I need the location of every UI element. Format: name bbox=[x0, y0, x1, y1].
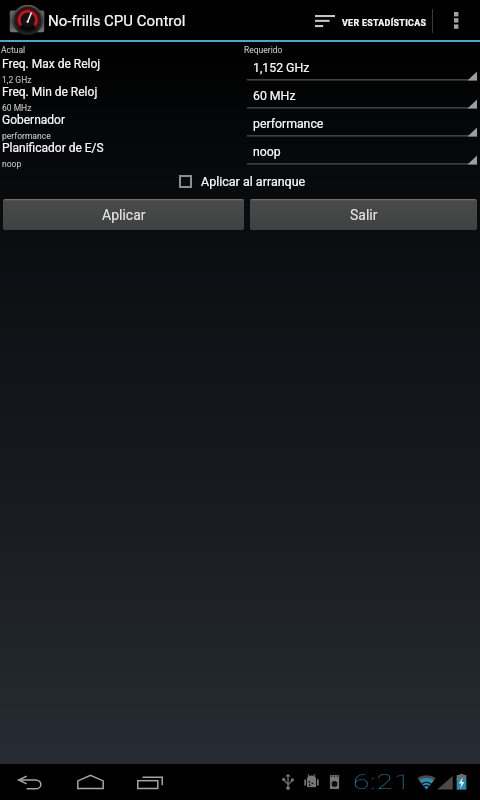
staticText: performance bbox=[2, 131, 51, 141]
button[interactable]: 1,152 GHz bbox=[244, 52, 480, 80]
button[interactable]: Aplicar bbox=[3, 199, 244, 230]
staticText: 6:21 bbox=[353, 770, 413, 795]
staticText: noop bbox=[2, 159, 22, 169]
staticText: Planificador de E/S bbox=[2, 141, 104, 155]
staticText: Salir bbox=[350, 207, 378, 223]
staticText: Gobernador bbox=[2, 113, 66, 127]
staticText: 1,2 GHz bbox=[2, 75, 32, 85]
button[interactable]: performance bbox=[244, 108, 480, 136]
button[interactable]: Aplicar al arranque bbox=[179, 171, 306, 191]
staticText: 60 MHz bbox=[2, 103, 32, 113]
button[interactable]: VER ESTADÍSTICAS bbox=[306, 0, 432, 40]
staticText: Freq. Max de Reloj bbox=[2, 57, 101, 71]
staticText: performance bbox=[253, 117, 324, 131]
button[interactable]: noop bbox=[244, 136, 480, 164]
button[interactable]: Salir bbox=[250, 199, 477, 230]
staticText: Freq. Min de Reloj bbox=[2, 85, 98, 99]
staticText: 60 MHz bbox=[253, 89, 296, 103]
staticText: noop bbox=[253, 145, 281, 159]
button[interactable]: More options bbox=[436, 0, 476, 40]
button[interactable]: Back bbox=[6, 764, 54, 800]
staticText: Requerido bbox=[244, 45, 283, 55]
staticText: 1,152 GHz bbox=[253, 61, 310, 75]
staticText: Aplicar bbox=[102, 207, 146, 223]
staticText: VER ESTADÍSTICAS bbox=[342, 18, 427, 28]
button[interactable]: 60 MHz bbox=[244, 80, 480, 108]
button[interactable]: Home bbox=[66, 764, 114, 800]
staticText: Aplicar al arranque bbox=[201, 174, 306, 189]
staticText: Actual bbox=[1, 45, 26, 55]
staticText: No-frills CPU Control bbox=[48, 12, 186, 30]
button[interactable]: Recent apps bbox=[126, 764, 174, 800]
